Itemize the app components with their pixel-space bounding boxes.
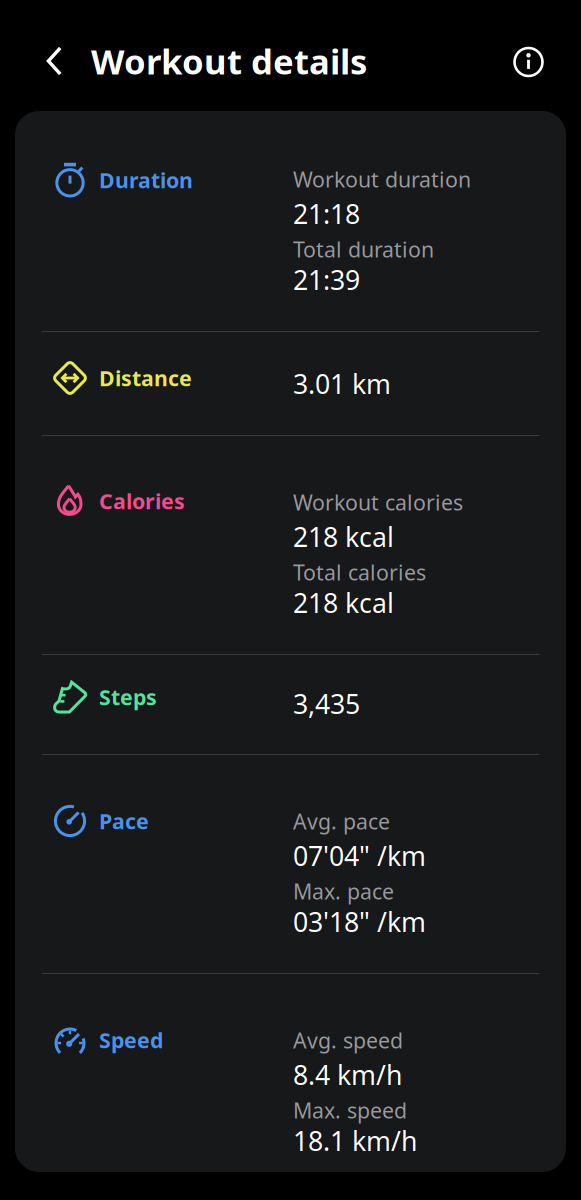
staticText: 21:18 [293,196,360,231]
button[interactable]: Back [0,13,91,98]
staticText: 3.01 km [293,366,391,401]
staticText: 03'18" /km [293,904,426,939]
staticText: 218 kcal [293,519,394,554]
staticText: Workout details [91,38,367,84]
staticText: Distance [99,364,192,392]
button[interactable]: Information [493,11,581,99]
staticText: Total duration [293,235,434,263]
staticText: Workout duration [293,165,471,193]
staticText: Total calories [293,558,426,586]
staticText: Duration [99,166,193,194]
staticText: 3,435 [293,686,360,721]
staticText: Speed [99,1026,163,1054]
staticText: Max. pace [293,877,394,905]
staticText: Avg. speed [293,1026,403,1054]
staticText: 8.4 km/h [293,1057,402,1092]
staticText: Pace [99,807,149,835]
staticText: 218 kcal [293,585,394,620]
staticText: Steps [99,683,157,711]
staticText: 21:39 [293,262,360,297]
staticText: Avg. pace [293,807,390,835]
staticText: Max. speed [293,1096,407,1124]
staticText: Workout calories [293,488,463,516]
staticText: 18.1 km/h [293,1123,417,1158]
staticText: Calories [99,487,185,515]
staticText: 07'04" /km [293,838,426,873]
